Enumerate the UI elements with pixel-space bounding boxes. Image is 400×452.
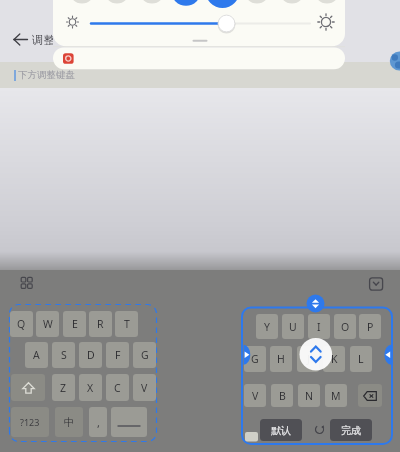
button[interactable]: I xyxy=(308,314,330,339)
button[interactable]: B xyxy=(271,384,293,407)
button[interactable]: , xyxy=(89,407,107,437)
staticText: Y xyxy=(264,320,270,334)
button[interactable]: R xyxy=(89,311,112,337)
button[interactable]: S xyxy=(52,342,75,368)
staticText: S xyxy=(61,348,67,362)
button[interactable]: ?123 xyxy=(11,407,49,437)
button[interactable]: 中 xyxy=(55,407,83,437)
button[interactable] xyxy=(111,407,147,437)
staticText: ?123 xyxy=(20,416,40,428)
button[interactable]: V xyxy=(133,374,156,401)
button[interactable]: 完成 xyxy=(330,419,372,441)
button[interactable]: K xyxy=(323,346,345,372)
staticText: I xyxy=(317,320,321,334)
staticText: R xyxy=(97,317,104,331)
staticText: A xyxy=(33,348,40,362)
staticText: Z xyxy=(60,381,67,395)
staticText: X xyxy=(87,381,94,395)
button[interactable]: W xyxy=(36,311,59,337)
button[interactable]: L xyxy=(350,346,372,372)
button[interactable]: H xyxy=(270,346,292,372)
staticText: Q xyxy=(17,317,26,331)
staticText: D xyxy=(87,348,95,362)
button[interactable]: X xyxy=(79,374,102,401)
button[interactable]: C xyxy=(106,374,129,401)
button[interactable]: Q xyxy=(10,311,33,337)
staticText: E xyxy=(72,317,78,331)
button[interactable]: P xyxy=(359,314,381,339)
button[interactable]: D xyxy=(79,342,102,368)
button[interactable]: G xyxy=(133,342,156,368)
staticText: 默认 xyxy=(271,424,291,437)
button[interactable] xyxy=(313,423,326,436)
button[interactable]: F xyxy=(106,342,129,368)
button[interactable]: U xyxy=(282,314,304,339)
button[interactable]: 调整 xyxy=(32,33,53,48)
staticText: F xyxy=(115,348,121,362)
staticText: V xyxy=(141,381,148,395)
staticText: T xyxy=(124,317,130,331)
button[interactable]: J xyxy=(297,346,319,372)
staticText: H xyxy=(277,352,285,366)
button[interactable]: E xyxy=(63,311,86,337)
staticText: M xyxy=(331,389,341,403)
button[interactable]: G xyxy=(244,346,266,372)
button[interactable]: O xyxy=(334,314,356,339)
staticText: U xyxy=(289,320,297,334)
staticText: 下方调整键盘 xyxy=(18,69,75,81)
staticText: G xyxy=(141,348,149,362)
button[interactable]: V xyxy=(244,384,266,407)
staticText: 调整 xyxy=(32,33,53,47)
button[interactable]: T xyxy=(115,311,138,337)
staticText: B xyxy=(279,389,286,403)
button[interactable]: A xyxy=(25,342,48,368)
staticText: N xyxy=(305,389,313,403)
button[interactable]: Y xyxy=(256,314,278,339)
staticText: , xyxy=(97,415,100,430)
staticText: O xyxy=(341,320,350,334)
button[interactable]: M xyxy=(325,384,347,407)
staticText: L xyxy=(358,352,364,366)
staticText: G xyxy=(251,352,259,366)
staticText: V xyxy=(252,389,259,403)
staticText: 中 xyxy=(64,416,75,429)
staticText: 完成 xyxy=(341,424,361,437)
button[interactable]: 默认 xyxy=(260,419,302,441)
staticText: W xyxy=(43,317,53,331)
staticText: P xyxy=(367,320,374,334)
button[interactable]: Z xyxy=(52,374,75,401)
staticText: K xyxy=(331,352,338,366)
button[interactable]: N xyxy=(298,384,320,407)
button[interactable] xyxy=(11,374,45,401)
staticText: C xyxy=(114,381,121,395)
button[interactable] xyxy=(358,384,382,407)
